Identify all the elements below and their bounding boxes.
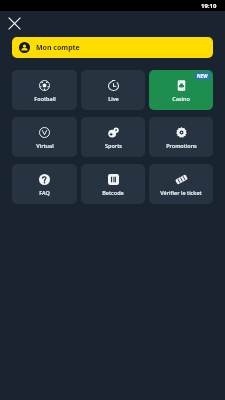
button[interactable]: Close	[5, 14, 24, 33]
staticText: FAQ	[39, 189, 50, 196]
button[interactable]: Betcode	[81, 164, 145, 204]
button[interactable]: Football	[12, 70, 77, 110]
staticText: Vérifier le ticket	[160, 189, 202, 196]
button[interactable]: Casino	[149, 70, 213, 110]
button[interactable]: Live	[81, 70, 145, 110]
staticText: NEW	[197, 73, 208, 79]
button[interactable]: Promotions	[149, 117, 213, 157]
button[interactable]: FAQ	[12, 164, 77, 204]
button[interactable]: Vérifier le ticket	[149, 164, 213, 204]
button[interactable]: Mon compte	[12, 37, 213, 58]
staticText: 19:10	[201, 2, 217, 10]
staticText: Football	[34, 95, 56, 102]
staticText: Betcode	[102, 189, 124, 196]
staticText: Sports	[105, 142, 122, 149]
staticText: Casino	[172, 95, 190, 102]
button[interactable]: Sports	[81, 117, 145, 157]
staticText: Live	[108, 95, 119, 102]
staticText: Promotions	[166, 142, 197, 149]
staticText: Mon compte	[36, 43, 80, 53]
staticText: Virtual	[36, 142, 54, 149]
button[interactable]: Virtual	[12, 117, 77, 157]
